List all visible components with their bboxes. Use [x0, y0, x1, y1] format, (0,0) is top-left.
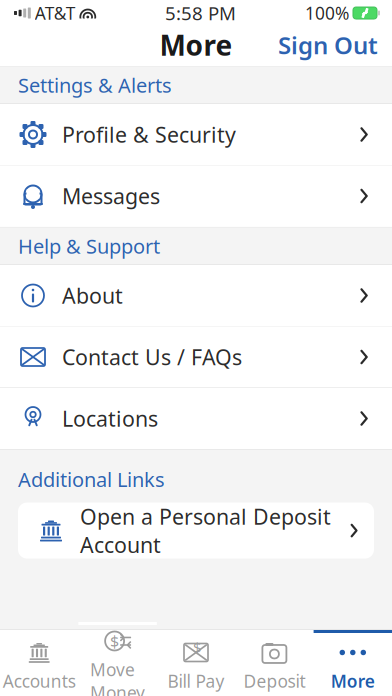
button[interactable]: Sign Out [278, 21, 392, 69]
staticText: Bill Pay [167, 669, 224, 692]
staticText: 5:58 PM [165, 1, 236, 25]
staticText: 100% [305, 1, 349, 24]
staticText: Open a Personal Deposit Account [80, 502, 331, 559]
staticText: Contact Us / FAQs [62, 343, 242, 371]
staticText: Deposit [243, 669, 305, 692]
button[interactable]: More [314, 630, 392, 696]
staticText: Sign Out [278, 29, 378, 61]
staticText: More [331, 669, 375, 692]
staticText: $ [110, 630, 119, 652]
button[interactable]: Messages [0, 165, 392, 227]
staticText: Help & Support [18, 233, 160, 259]
staticText: Accounts [3, 669, 76, 692]
button[interactable]: $ [78, 630, 157, 696]
button[interactable]: Accounts [0, 630, 78, 696]
staticText: Profile & Security [62, 120, 236, 149]
staticText: $ [193, 638, 201, 657]
staticText: Move Money [90, 658, 145, 696]
staticText: AT&T [35, 1, 76, 24]
button[interactable]: Deposit [235, 630, 314, 696]
button[interactable]: Contact Us / FAQs [0, 326, 392, 388]
button[interactable]: About [0, 265, 392, 326]
button[interactable]: $ [157, 630, 235, 696]
staticText: Settings & Alerts [18, 72, 172, 98]
staticText: Locations [62, 404, 158, 433]
button[interactable]: Locations [0, 388, 392, 449]
staticText: About [62, 281, 123, 310]
staticText: More [159, 26, 232, 64]
button[interactable]: Open a Personal Deposit Account [18, 503, 374, 559]
staticText: Additional Links [18, 466, 165, 493]
button[interactable]: Profile & Security [0, 104, 392, 165]
staticText: Messages [62, 182, 160, 210]
